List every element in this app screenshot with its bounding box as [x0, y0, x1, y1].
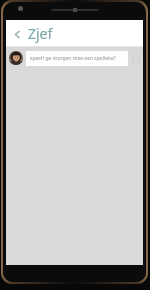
staticText: speelt ge morgen mee een spelleke? — [30, 55, 116, 62]
button[interactable]: speelt ge morgen mee een spelleke? — [6, 47, 143, 69]
button[interactable]: Back — [9, 22, 25, 46]
button[interactable]: Message status — [131, 54, 140, 63]
staticText: Zjef — [28, 24, 53, 43]
